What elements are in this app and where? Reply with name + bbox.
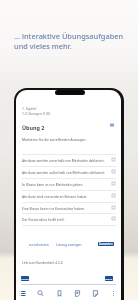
button[interactable]: Inhaltsverzeichnis xyxy=(16,286,30,300)
staticText: 1. Kapitel xyxy=(22,106,37,110)
button[interactable]: weiter xyxy=(105,276,113,281)
button[interactable]: Eine Klasse kann nur Konstruktor haben. xyxy=(22,202,116,214)
button[interactable]: Attribute werden unterhalb von Methoden … xyxy=(22,154,116,166)
staticText: ... interaktive Übungsaufgaben xyxy=(14,31,124,41)
button[interactable]: Attribute werden außerhalb von Methoden … xyxy=(22,166,116,178)
button[interactable]: Attribute sind von anderen Klassen lesba… xyxy=(22,190,116,202)
button[interactable]: Der Konstruktor heißt init(). xyxy=(22,213,116,225)
staticText: Der Konstruktor heißt init(). xyxy=(22,217,65,221)
staticText: Markieren Sie die zutreffenden Aussagen. xyxy=(22,137,87,141)
staticText: zurück xyxy=(21,277,29,280)
staticText: weiter xyxy=(105,277,113,280)
button[interactable]: Dokumente xyxy=(87,286,103,300)
button[interactable]: Link zum Kundentitel: 4.2.4 xyxy=(22,261,63,265)
staticText: Attribute werden außerhalb von Methoden … xyxy=(22,170,106,174)
staticText: Link zum Kundentitel: 4.2.4 xyxy=(22,261,63,265)
staticText: zurücksetzen xyxy=(29,243,49,247)
button[interactable]: zurück xyxy=(21,276,29,281)
staticText: Attribute sind von anderen Klassen lesba… xyxy=(22,194,87,198)
staticText: Auswerten xyxy=(99,242,113,246)
staticText: Übung 2 xyxy=(22,124,45,131)
staticText: und vieles mehr. xyxy=(14,41,72,51)
staticText: 1.2 Übungen (1/8) xyxy=(22,111,50,115)
button[interactable]: Notizen xyxy=(69,286,85,300)
button[interactable]: Lesezeichen xyxy=(51,286,67,300)
staticText: Attribute werden unterhalb von Methoden … xyxy=(22,158,105,162)
button[interactable]: Lösung anzeigen xyxy=(56,243,82,247)
button[interactable]: In Klasse kann es nur Methoden geben. xyxy=(22,178,116,190)
staticText: Lösung anzeigen xyxy=(56,243,82,247)
staticText: In Klasse kann es nur Methoden geben. xyxy=(22,182,84,186)
button[interactable]: Übung zurücksetzen xyxy=(107,120,117,130)
button[interactable]: zurücksetzen xyxy=(29,243,49,247)
staticText: Eine Klasse kann nur Konstruktor haben. xyxy=(22,206,85,210)
button[interactable]: Suche xyxy=(32,286,48,300)
button[interactable]: Auswerten xyxy=(98,242,114,246)
button[interactable]: Mehr xyxy=(105,286,121,300)
